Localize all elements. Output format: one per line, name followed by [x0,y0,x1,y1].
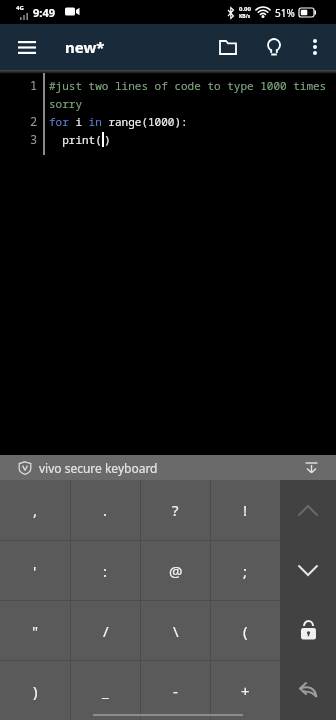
button[interactable]: / [71,601,140,660]
staticText: / [103,621,109,641]
staticText: - [173,681,178,701]
staticText: " [32,621,39,641]
staticText: new* [65,37,105,57]
button[interactable]: , [0,480,70,540]
button[interactable] [7,24,47,70]
button[interactable]: : [71,541,140,600]
button[interactable]: ) [0,661,70,720]
button[interactable]: \ [141,601,210,660]
staticText: ! [243,500,248,520]
staticText: 3 [30,131,38,147]
staticText: 2 [30,113,38,129]
button[interactable]: " [0,601,70,660]
button[interactable] [254,24,294,70]
staticText: ) [104,132,111,147]
button[interactable] [280,480,336,540]
staticText: 9:49 [33,5,55,20]
staticText: vivo secure keyboard [39,460,158,476]
staticText: 51% [275,6,295,20]
button[interactable]: + [211,661,280,720]
staticText: 4G [16,4,24,12]
button[interactable]: ( [211,601,280,660]
button[interactable] [280,600,336,660]
staticText: 1 [30,77,38,93]
staticText: #just two lines of code to type 1000 tim… [49,78,327,93]
staticText: . [103,500,108,520]
staticText: , [33,500,38,520]
button[interactable]: ; [211,541,280,600]
staticText: \ [173,621,179,641]
button[interactable]: ? [141,480,210,540]
staticText: KB/s [239,13,251,20]
staticText: ( [243,621,248,641]
staticText: print( [49,132,102,147]
button[interactable] [294,24,336,70]
button[interactable] [280,540,336,600]
staticText: @ [169,561,183,581]
button[interactable]: ! [211,480,280,540]
staticText: ' [33,561,37,581]
button[interactable]: . [71,480,140,540]
button[interactable]: - [141,661,210,720]
button[interactable]: _ [71,661,140,720]
button[interactable]: ' [0,541,70,600]
button[interactable] [208,24,248,70]
staticText: 0.00 [239,5,251,13]
staticText: + [241,681,250,701]
staticText: for i in range(1000): [49,114,188,129]
staticText: sorry [49,96,82,111]
button[interactable]: vivo secure keyboard [0,455,336,480]
staticText: _ [102,681,109,701]
staticText: ; [243,561,248,581]
staticText: ) [33,681,38,701]
staticText: ? [172,500,179,520]
button[interactable]: @ [141,541,210,600]
staticText: : [103,561,108,581]
button[interactable] [280,660,336,720]
